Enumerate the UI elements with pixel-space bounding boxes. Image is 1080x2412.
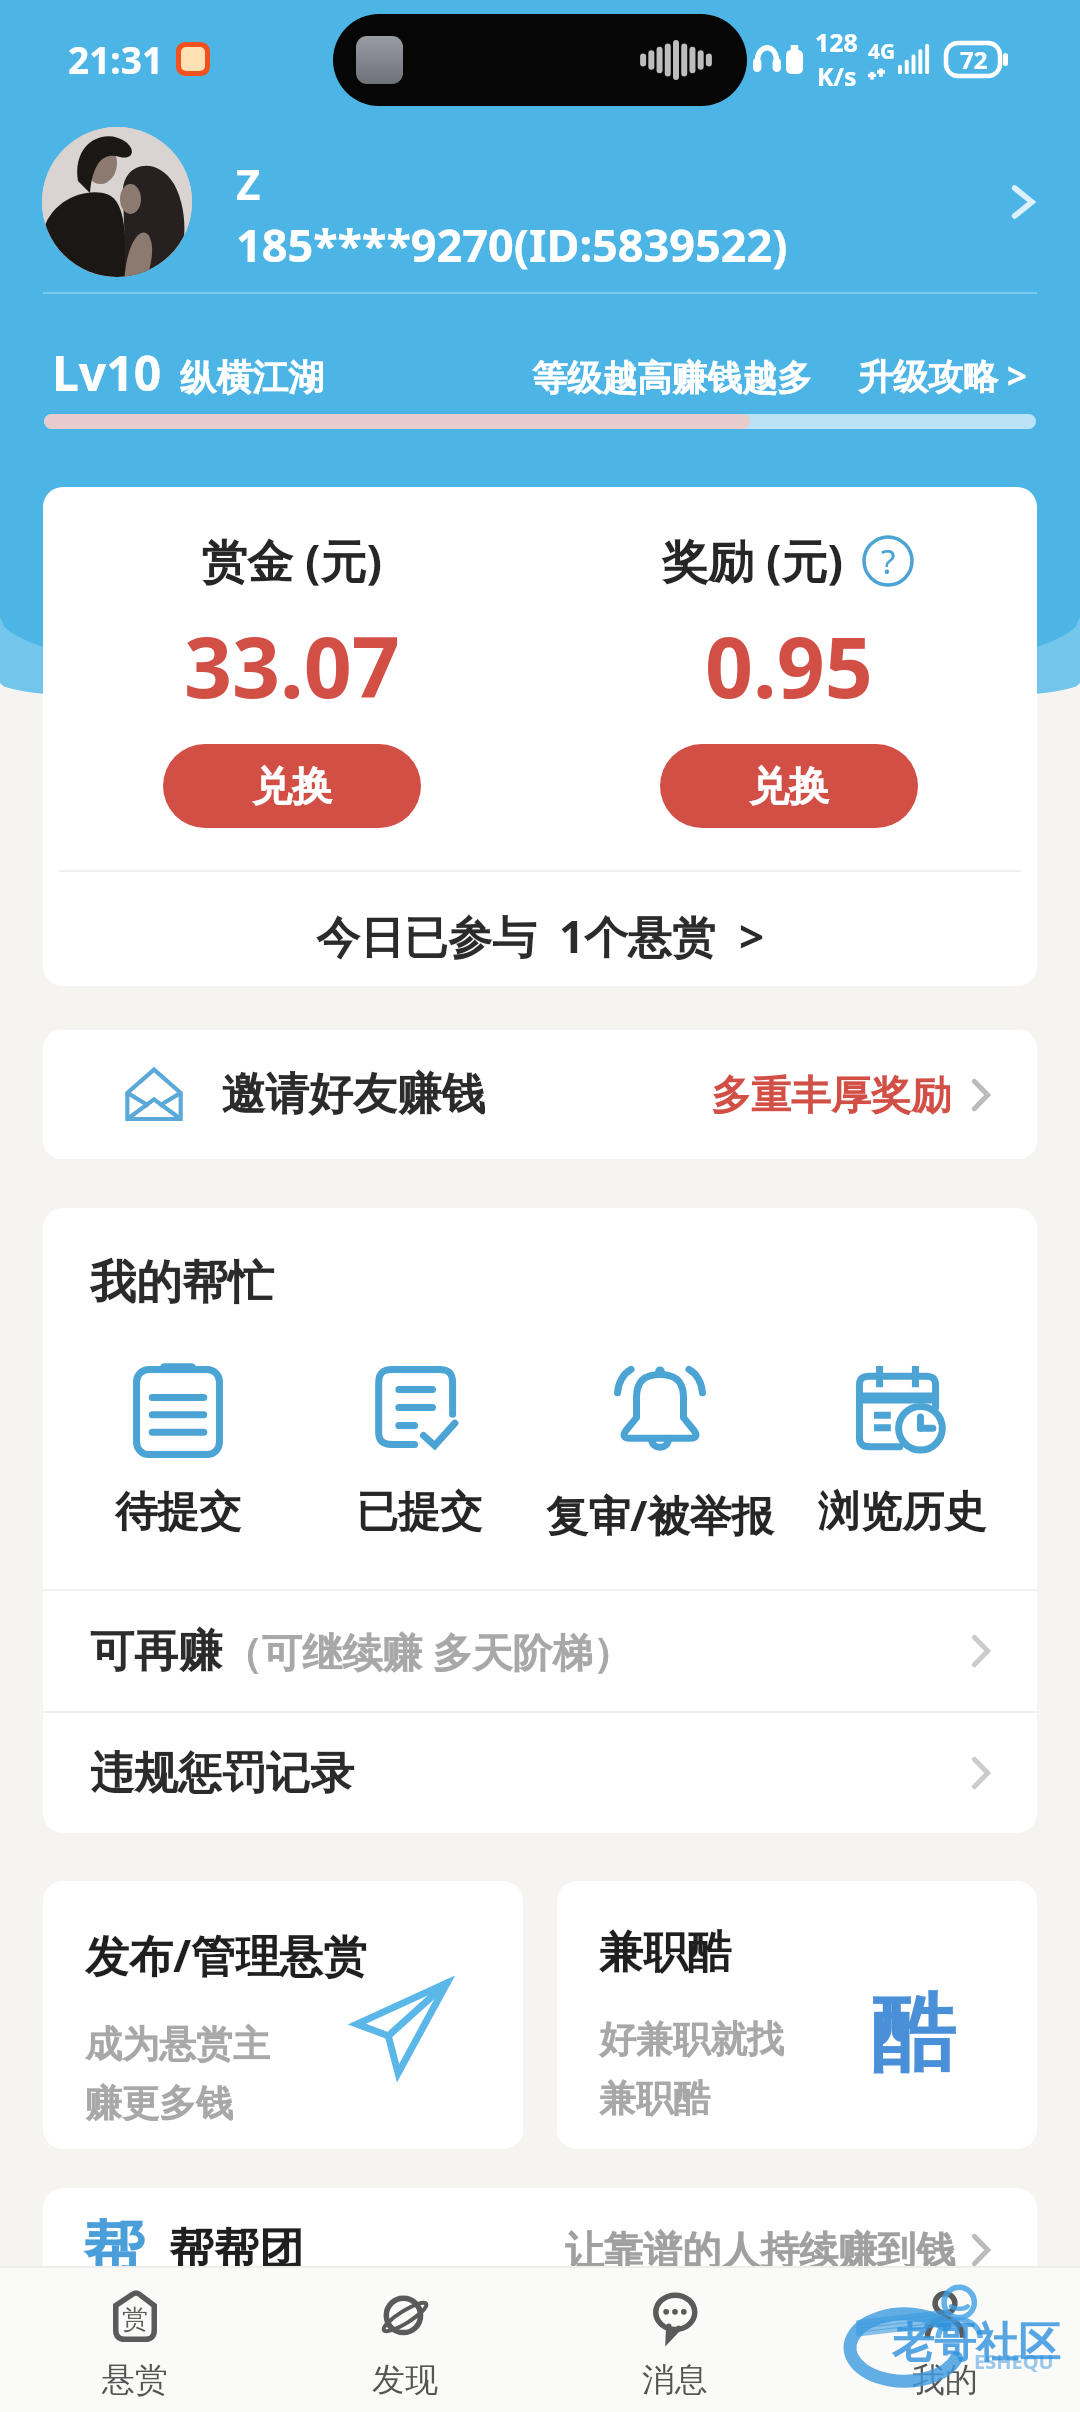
- staticText: 成为悬赏主: [85, 2021, 270, 2068]
- button[interactable]: 复审/被举报: [539, 1356, 781, 1543]
- staticText: 4G: [868, 37, 896, 66]
- staticText: 复审/被举报: [546, 1486, 774, 1543]
- staticText: 兼职酷: [599, 2075, 710, 2122]
- button[interactable]: 发布/管理悬赏: [43, 1881, 523, 2149]
- staticText: 奖励 (元): [662, 529, 844, 592]
- staticText: 兼职酷: [599, 1925, 731, 1980]
- staticText: 发现: [372, 2359, 438, 2401]
- staticText: 已提交: [356, 1486, 482, 1539]
- staticText: K/s: [817, 59, 857, 93]
- button[interactable]: Help about reward: [860, 533, 916, 589]
- staticText: 酷: [871, 1981, 955, 2087]
- staticText: 浏览历史: [818, 1486, 986, 1539]
- other: Open profile details: [1008, 177, 1038, 227]
- staticText: 悬赏: [102, 2359, 168, 2401]
- button[interactable]: 可再赚: [43, 1591, 1037, 1711]
- staticText: 33.07: [184, 608, 400, 722]
- staticText: 邀请好友赚钱: [221, 1067, 485, 1122]
- staticText: 多重丰厚奖励: [711, 1070, 951, 1120]
- staticText: 可再赚: [90, 1624, 222, 1679]
- button[interactable]: 浏览历史: [781, 1356, 1023, 1539]
- staticText: 赚更多钱: [85, 2080, 233, 2127]
- button[interactable]: 已提交: [298, 1356, 539, 1539]
- staticText: 兑换: [252, 761, 332, 811]
- staticText: 兑换: [749, 761, 829, 811]
- staticText: 让靠谱的人持续赚到钱: [565, 2226, 955, 2275]
- staticText: 等级越高赚钱越多: [532, 356, 812, 400]
- staticText: Lv10: [52, 340, 162, 405]
- staticText: 128: [815, 25, 858, 59]
- button[interactable]: 赏: [0, 2280, 270, 2412]
- button[interactable]: 兼职酷: [557, 1881, 1037, 2149]
- button[interactable]: 帮: [43, 2188, 1037, 2312]
- button[interactable]: 邀请好友赚钱: [43, 1030, 1037, 1159]
- staticText: 违规惩罚记录: [90, 1746, 354, 1801]
- staticText: 我的: [912, 2359, 978, 2401]
- staticText: 升级攻略 >: [858, 352, 1028, 400]
- button[interactable]: Z: [0, 126, 1080, 278]
- staticText: 21:31: [68, 34, 164, 84]
- button[interactable]: 今日已参与 1个悬赏 >: [43, 872, 1037, 986]
- button[interactable]: 我的: [810, 2280, 1080, 2412]
- staticText: 赏金 (元): [201, 529, 383, 592]
- staticText: 纵横江湖: [180, 355, 324, 400]
- staticText: ESHEQU: [974, 2348, 1054, 2375]
- staticText: 赏: [122, 2303, 148, 2336]
- staticText: 185****9270(ID:5839522): [236, 214, 788, 275]
- staticText: 发布/管理悬赏: [85, 1925, 368, 1985]
- staticText: 帮帮团: [169, 2222, 304, 2279]
- button[interactable]: 兑换: [163, 744, 421, 828]
- staticText: 0.95: [705, 608, 873, 722]
- button[interactable]: Lv10: [52, 340, 1028, 405]
- button[interactable]: 待提交: [57, 1356, 298, 1539]
- button[interactable]: 消息: [540, 2280, 810, 2412]
- button[interactable]: 违规惩罚记录: [43, 1713, 1037, 1833]
- button[interactable]: 兑换: [660, 744, 918, 828]
- staticText: 好兼职就找: [599, 2016, 784, 2063]
- staticText: ?: [881, 539, 896, 584]
- button[interactable]: 发现: [270, 2280, 540, 2412]
- staticText: 帮: [83, 2211, 145, 2289]
- staticText: 72: [960, 43, 988, 76]
- staticText: 待提交: [115, 1486, 241, 1539]
- staticText: 我的帮忙: [90, 1254, 274, 1312]
- staticText: 老哥社区: [892, 2317, 1060, 2370]
- staticText: （可继续赚 多天阶梯）: [222, 1624, 633, 1679]
- staticText: 今日已参与 1个悬赏 >: [316, 906, 765, 966]
- staticText: 消息: [642, 2359, 708, 2401]
- staticText: Z: [236, 155, 261, 212]
